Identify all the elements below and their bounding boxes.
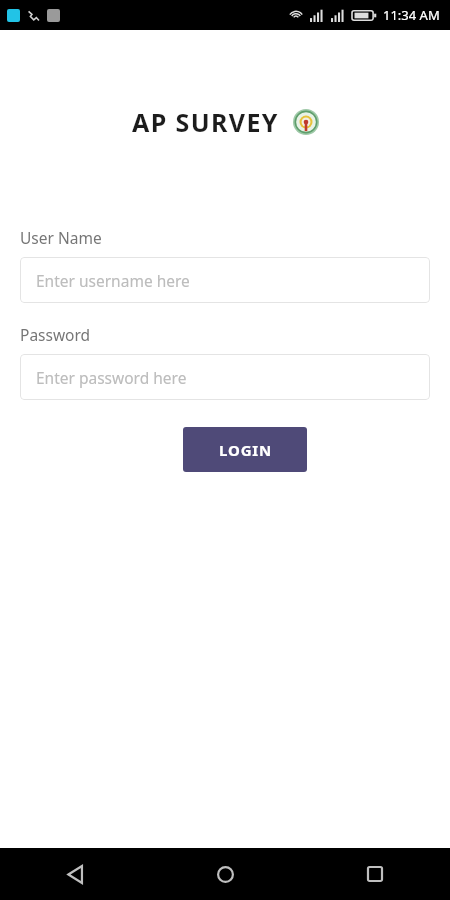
staticText: Password: [20, 324, 91, 345]
staticText: User Name: [20, 227, 102, 248]
button[interactable]: LOGIN: [183, 427, 307, 472]
button[interactable]: Enter username here: [20, 257, 430, 303]
button[interactable]: Back: [0, 848, 150, 900]
staticText: LOGIN: [219, 440, 272, 460]
button[interactable]: Enter password here: [20, 354, 430, 400]
button[interactable]: Recent apps: [300, 848, 450, 900]
staticText: 11:34 AM: [383, 6, 440, 24]
button[interactable]: Home: [150, 848, 300, 900]
staticText: Enter password here: [36, 367, 187, 388]
staticText: AP SURVEY: [132, 105, 279, 139]
staticText: Enter username here: [36, 270, 190, 291]
